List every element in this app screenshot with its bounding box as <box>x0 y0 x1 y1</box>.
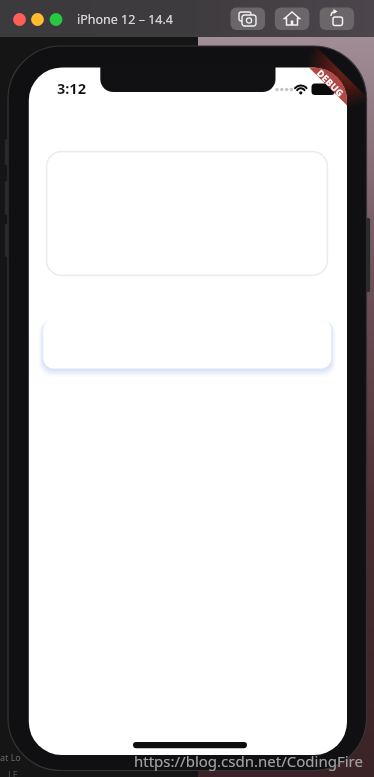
button[interactable] <box>274 7 309 30</box>
button[interactable] <box>319 7 354 30</box>
staticText: iPhone 12 – 14.4 <box>77 11 173 28</box>
staticText: https://blog.csdn.net/CodingFire <box>134 751 363 771</box>
staticText: DEBUG <box>315 67 347 99</box>
staticText: at Lo <box>0 751 21 763</box>
button[interactable] <box>230 7 265 30</box>
staticText: 3:12 <box>57 78 86 98</box>
staticText: LE <box>8 768 18 777</box>
